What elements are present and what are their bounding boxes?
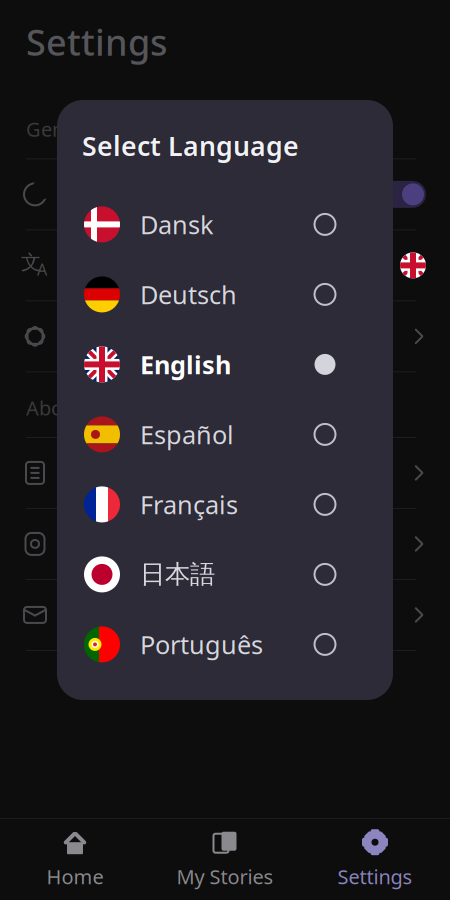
staticText: Settings xyxy=(337,863,412,890)
button[interactable]: Español xyxy=(57,399,393,469)
staticText: 日本語 xyxy=(140,559,215,590)
staticText: Português xyxy=(140,628,263,661)
button[interactable]: Deutsch xyxy=(57,259,393,329)
button[interactable]: Français xyxy=(57,469,393,539)
staticText: My Stories xyxy=(176,863,273,890)
staticText: English xyxy=(140,348,231,381)
button[interactable]: My Stories xyxy=(150,819,300,900)
button[interactable]: Setting xyxy=(0,301,450,371)
button[interactable]: Setting xyxy=(0,230,450,300)
button[interactable]: Settings xyxy=(300,819,450,900)
staticText: Deutsch xyxy=(140,278,237,311)
staticText: A xyxy=(37,259,47,280)
staticText: About xyxy=(26,394,82,421)
button[interactable]: Setting xyxy=(0,159,450,229)
button[interactable]: English xyxy=(57,329,393,399)
staticText: Home xyxy=(46,863,103,890)
button[interactable]: 日本語 xyxy=(57,539,393,609)
staticText: Español xyxy=(140,418,234,451)
button[interactable]: Português xyxy=(57,609,393,679)
staticText: General xyxy=(26,116,99,142)
staticText: 文 xyxy=(21,250,41,275)
staticText: Français xyxy=(140,488,238,521)
button[interactable]: Dansk xyxy=(57,189,393,259)
button[interactable]: Setting xyxy=(0,509,450,579)
staticText: Settings xyxy=(26,18,167,66)
staticText: Dansk xyxy=(140,208,214,241)
staticText: Select Language xyxy=(82,128,299,163)
button[interactable]: Setting xyxy=(0,438,450,508)
button[interactable]: Home xyxy=(0,819,150,900)
button[interactable]: Setting xyxy=(0,580,450,650)
